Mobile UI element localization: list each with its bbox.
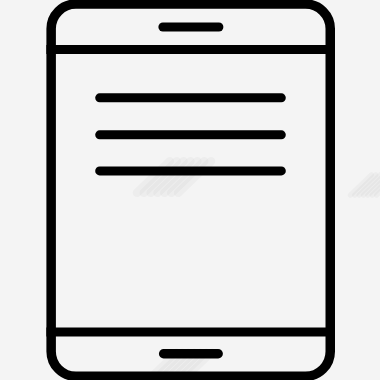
button[interactable]: Tablet with lines of text <box>0 0 380 380</box>
